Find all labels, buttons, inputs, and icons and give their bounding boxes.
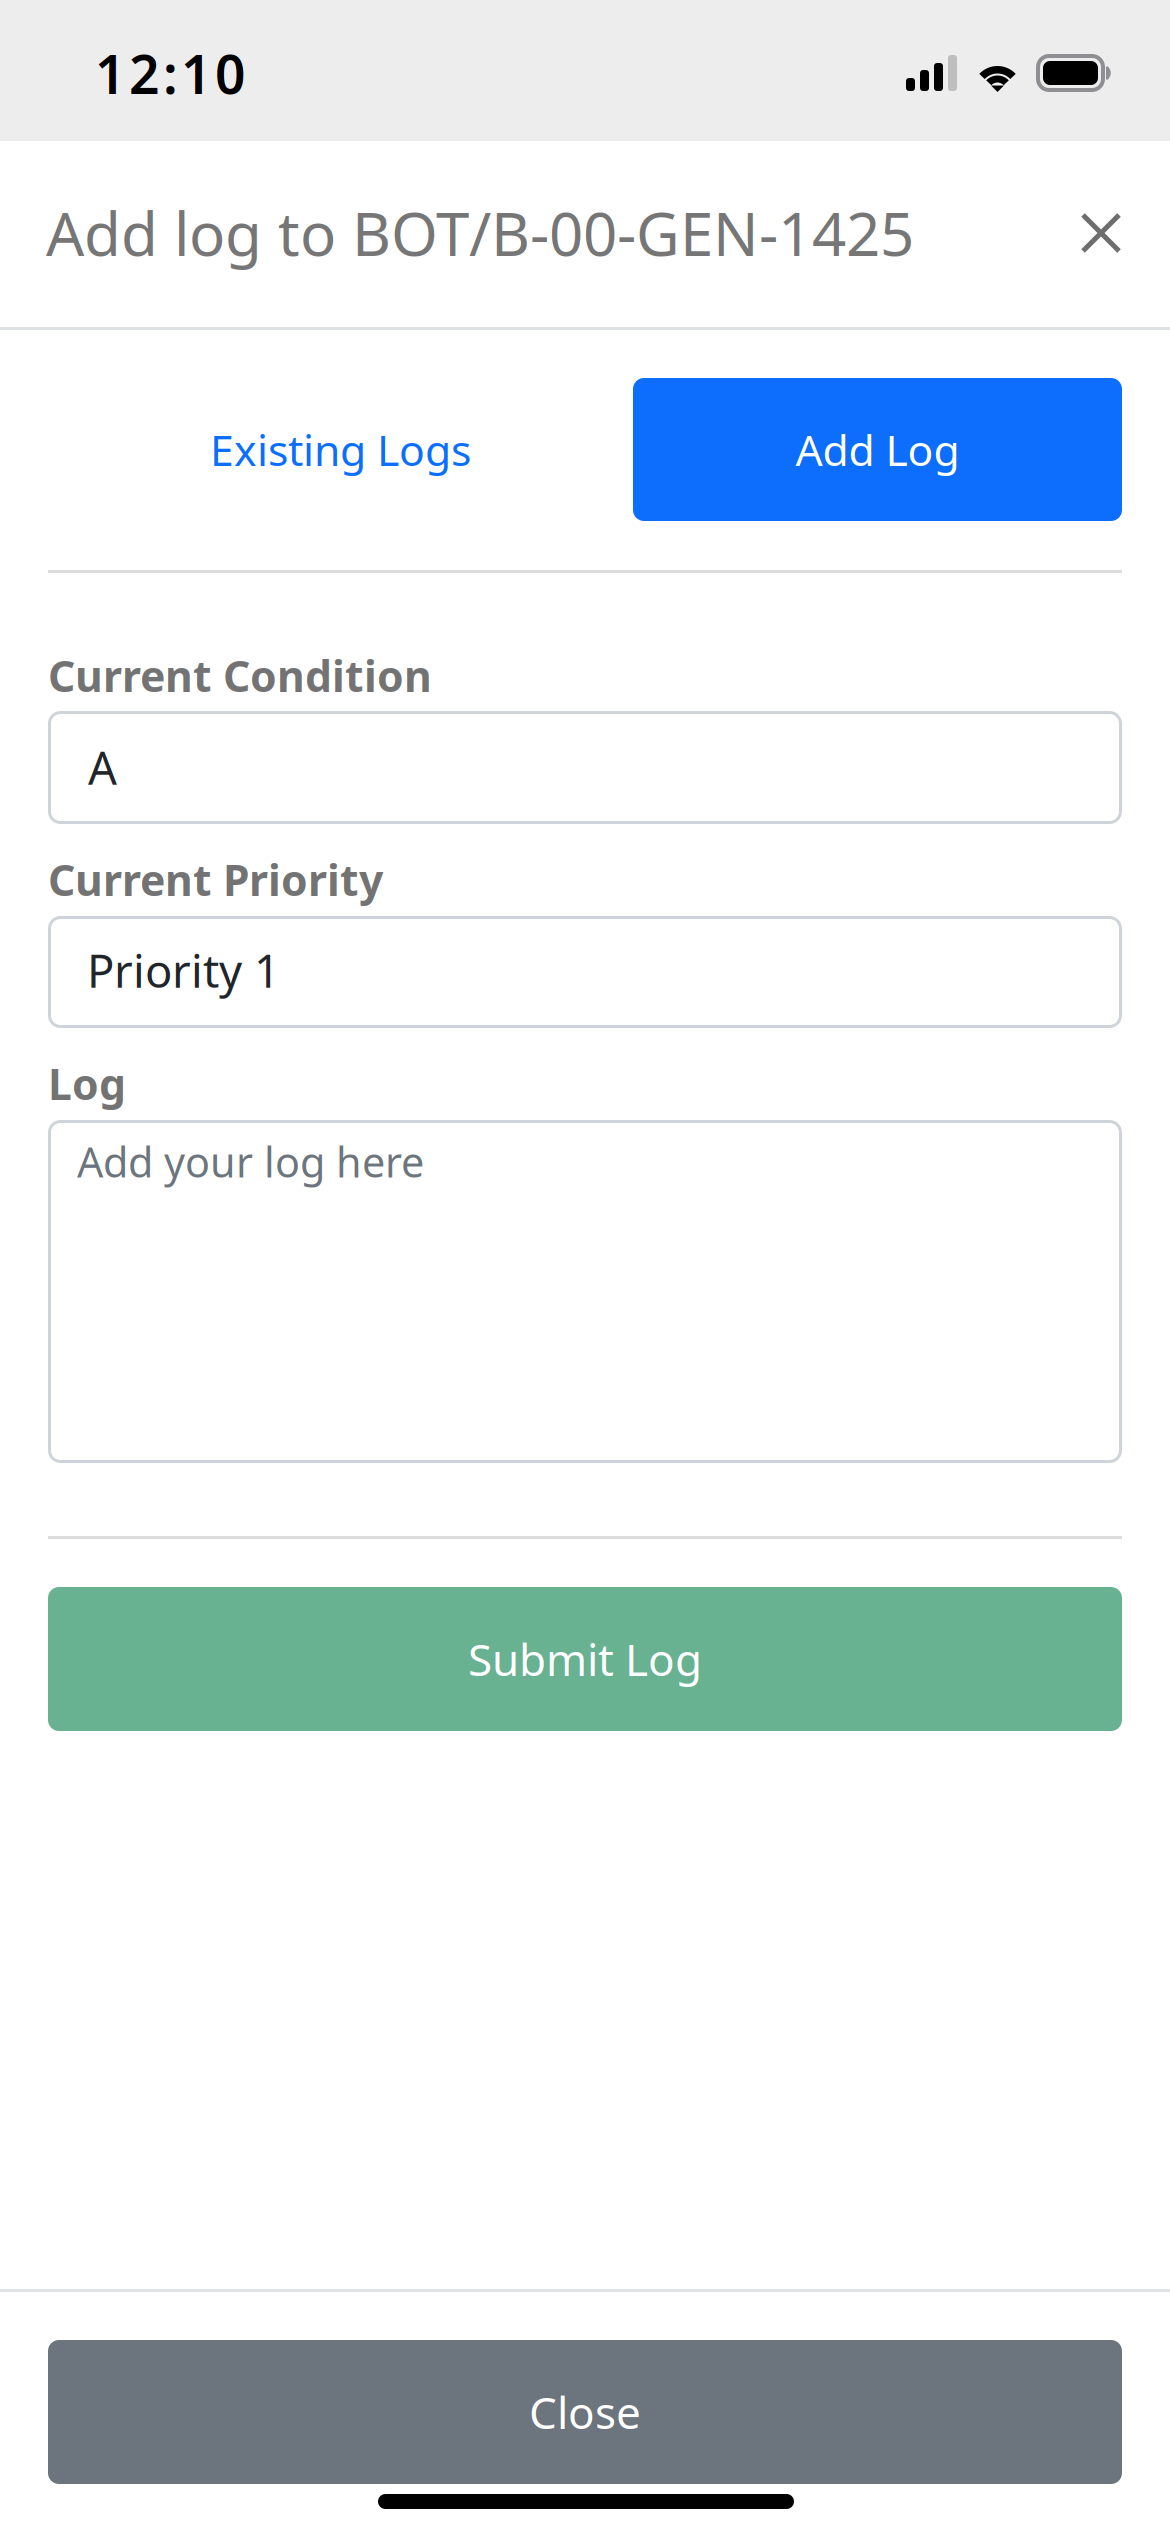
- staticText: Submit Log: [468, 1630, 702, 1688]
- staticText: Log: [48, 1055, 126, 1112]
- button[interactable]: Add Log: [633, 378, 1122, 521]
- staticText: Add log to BOT/B-00-GEN-1425: [46, 193, 914, 273]
- staticText: 12:10: [95, 38, 246, 109]
- staticText: Current Priority: [48, 851, 383, 908]
- button[interactable]: Close: [1072, 204, 1130, 262]
- button[interactable]: Close: [48, 2340, 1122, 2484]
- button[interactable]: Existing Logs: [48, 378, 633, 521]
- staticText: Existing Logs: [210, 421, 471, 478]
- staticText: Current Condition: [48, 647, 432, 704]
- staticText: Add your log here: [77, 1134, 424, 1189]
- staticText: A: [88, 737, 117, 797]
- button[interactable]: Submit Log: [48, 1587, 1122, 1731]
- staticText: Add Log: [795, 421, 959, 478]
- staticText: Close: [529, 2383, 641, 2441]
- staticText: Priority 1: [87, 940, 280, 1000]
